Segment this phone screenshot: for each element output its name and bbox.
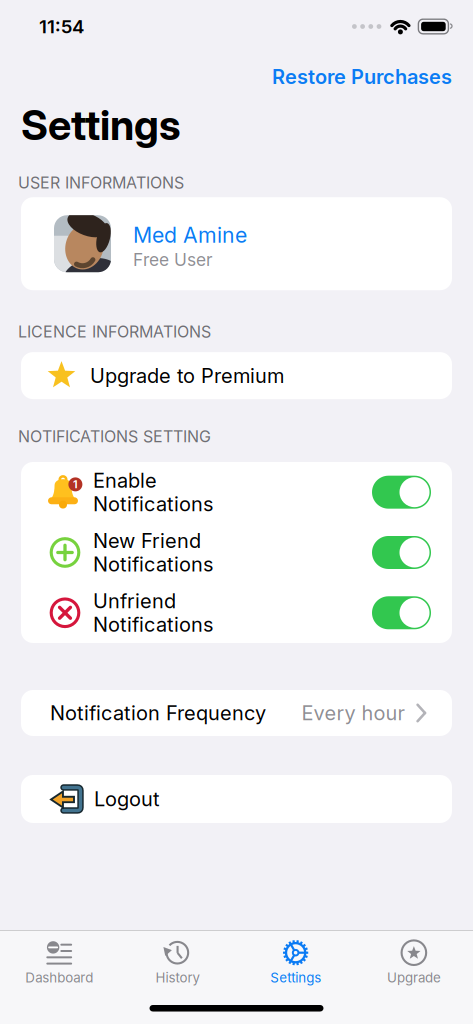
staticText: Settings	[270, 970, 321, 985]
staticText: USER INFORMATIONS	[18, 173, 184, 192]
staticText: 1	[73, 478, 78, 491]
staticText: Every hour	[302, 701, 405, 725]
button[interactable]: Restore Purchases	[272, 65, 452, 89]
button[interactable]: Enable Notifications	[372, 476, 431, 509]
staticText: NOTIFICATIONS SETTING	[18, 427, 211, 446]
button[interactable]: History	[118, 940, 236, 985]
staticText: LICENCE INFORMATIONS	[18, 322, 211, 341]
button[interactable]: New Friend Notifications	[372, 536, 431, 569]
staticText: Notification Frequency	[50, 701, 266, 725]
staticText: Upgrade to Premium	[90, 364, 284, 387]
button[interactable]: Settings	[236, 940, 355, 985]
button[interactable]: Upgrade to Premium	[21, 352, 452, 399]
staticText: Restore Purchases	[272, 65, 452, 89]
staticText: Free User	[133, 250, 213, 270]
staticText: Enable Notifications	[93, 469, 213, 516]
staticText: 11:54	[39, 15, 84, 37]
staticText: Upgrade	[387, 970, 441, 985]
staticText: Dashboard	[25, 970, 93, 985]
button[interactable]: Logout	[21, 775, 452, 823]
staticText: Med Amine	[133, 222, 247, 248]
button[interactable]: Med Amine	[21, 197, 452, 290]
button[interactable]: Unfriend Notifications	[372, 596, 431, 629]
button[interactable]: Upgrade	[355, 940, 473, 985]
staticText: New Friend Notifications	[93, 529, 213, 576]
staticText: Settings	[21, 101, 181, 149]
staticText: Unfriend Notifications	[93, 589, 213, 636]
staticText: Logout	[94, 787, 160, 811]
staticText: History	[155, 970, 199, 985]
button[interactable]: Dashboard	[0, 940, 118, 985]
button[interactable]: Notification Frequency	[21, 690, 452, 736]
